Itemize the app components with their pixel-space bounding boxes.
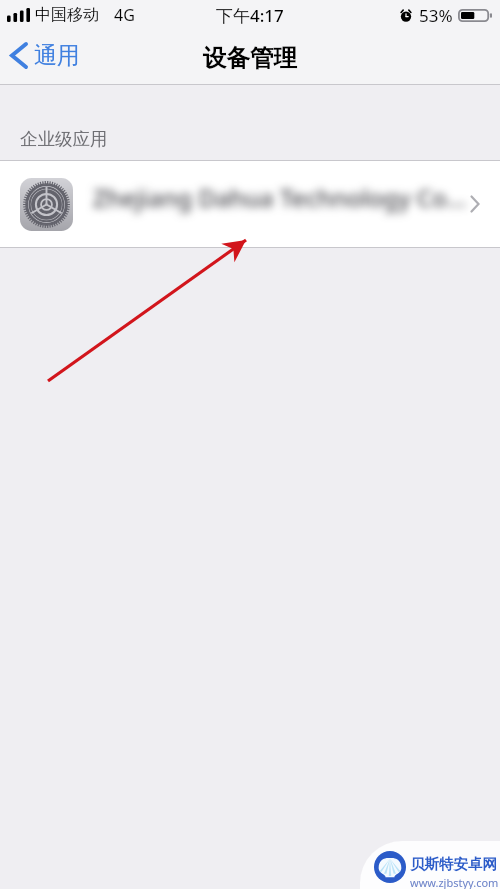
- staticText: 4G: [114, 4, 135, 26]
- staticText: 贝斯特安卓网: [410, 855, 497, 873]
- staticText: www.zjbstyy.com: [410, 875, 499, 889]
- staticText: Zhejiang Dahua Technology Co...: [93, 181, 467, 214]
- staticText: 通用: [34, 41, 80, 70]
- staticText: 下午4:17: [216, 4, 284, 27]
- button[interactable]: Back to 通用: [0, 35, 90, 76]
- staticText: 53%: [419, 4, 453, 27]
- button[interactable]: Zhejiang Dahua Technology Co., enterpris…: [0, 160, 500, 248]
- staticText: 企业级应用: [20, 128, 108, 150]
- staticText: 中国移动: [35, 5, 99, 25]
- staticText: 设备管理: [203, 43, 297, 73]
